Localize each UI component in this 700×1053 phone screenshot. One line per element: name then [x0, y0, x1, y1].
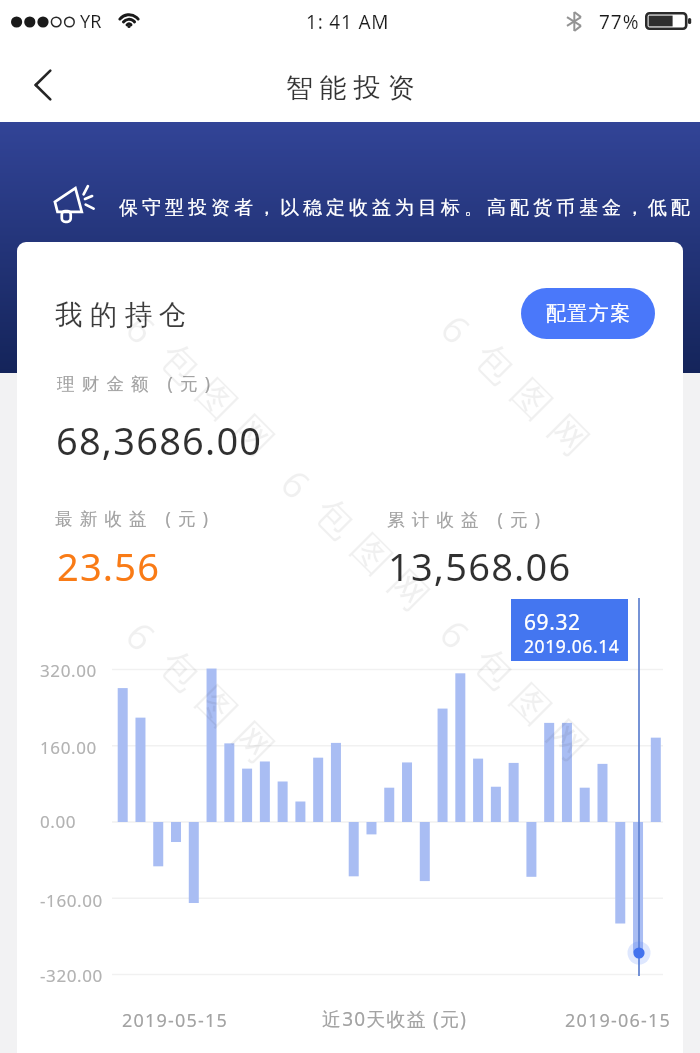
staticText: 保守型投资者，以稳定收益为目标。高配货币基金，低配	[117, 196, 692, 220]
staticText: 6	[436, 607, 482, 653]
staticText: 网	[542, 710, 598, 766]
staticText: 包	[469, 333, 525, 389]
staticText: 1: 41 AM	[306, 9, 390, 35]
staticText: 图	[346, 524, 402, 580]
staticText: 图	[191, 676, 247, 732]
staticText: 图	[505, 674, 561, 730]
staticText: 2019.06.14	[524, 634, 620, 658]
staticText: 160.00	[40, 736, 97, 759]
staticText: 最新收益 (元)	[55, 506, 216, 530]
staticText: 6	[277, 457, 323, 503]
staticText: YR	[80, 9, 102, 34]
staticText: 智能投资	[282, 71, 418, 105]
staticText: 320.00	[40, 659, 97, 682]
staticText: -320.00	[40, 964, 103, 987]
staticText: 包	[468, 638, 524, 694]
staticText: 6	[122, 302, 168, 348]
staticText: 包	[154, 640, 210, 696]
staticText: 包	[154, 333, 210, 389]
staticText: 23.56	[57, 540, 161, 592]
staticText: 0.00	[40, 810, 77, 833]
button[interactable]: Back	[16, 58, 70, 112]
staticText: 累计收益 (元)	[387, 507, 548, 531]
staticText: 图	[506, 369, 562, 425]
staticText: 13,568.06	[388, 540, 572, 592]
staticText: 2019-05-15	[122, 1008, 228, 1033]
staticText: 6	[122, 609, 168, 655]
staticText: 理财金额 (元)	[57, 371, 218, 395]
staticText: 网	[383, 560, 439, 616]
staticText: 网	[228, 712, 284, 768]
staticText: 77%	[599, 9, 640, 35]
staticText: 6	[437, 302, 483, 348]
staticText: 网	[543, 405, 599, 461]
staticText: 近30天收益 (元)	[322, 1006, 468, 1032]
staticText: -160.00	[40, 889, 103, 912]
staticText: 69.32	[524, 608, 581, 637]
staticText: 2019-06-15	[565, 1008, 671, 1033]
staticText: 包	[309, 488, 365, 544]
staticText: 我的持仓	[55, 298, 194, 333]
staticText: 68,3686.00	[56, 414, 263, 466]
staticText: 图	[191, 369, 247, 425]
button[interactable]: 配置方案	[521, 288, 655, 339]
staticText: 网	[228, 405, 284, 461]
staticText: 配置方案	[545, 301, 631, 326]
